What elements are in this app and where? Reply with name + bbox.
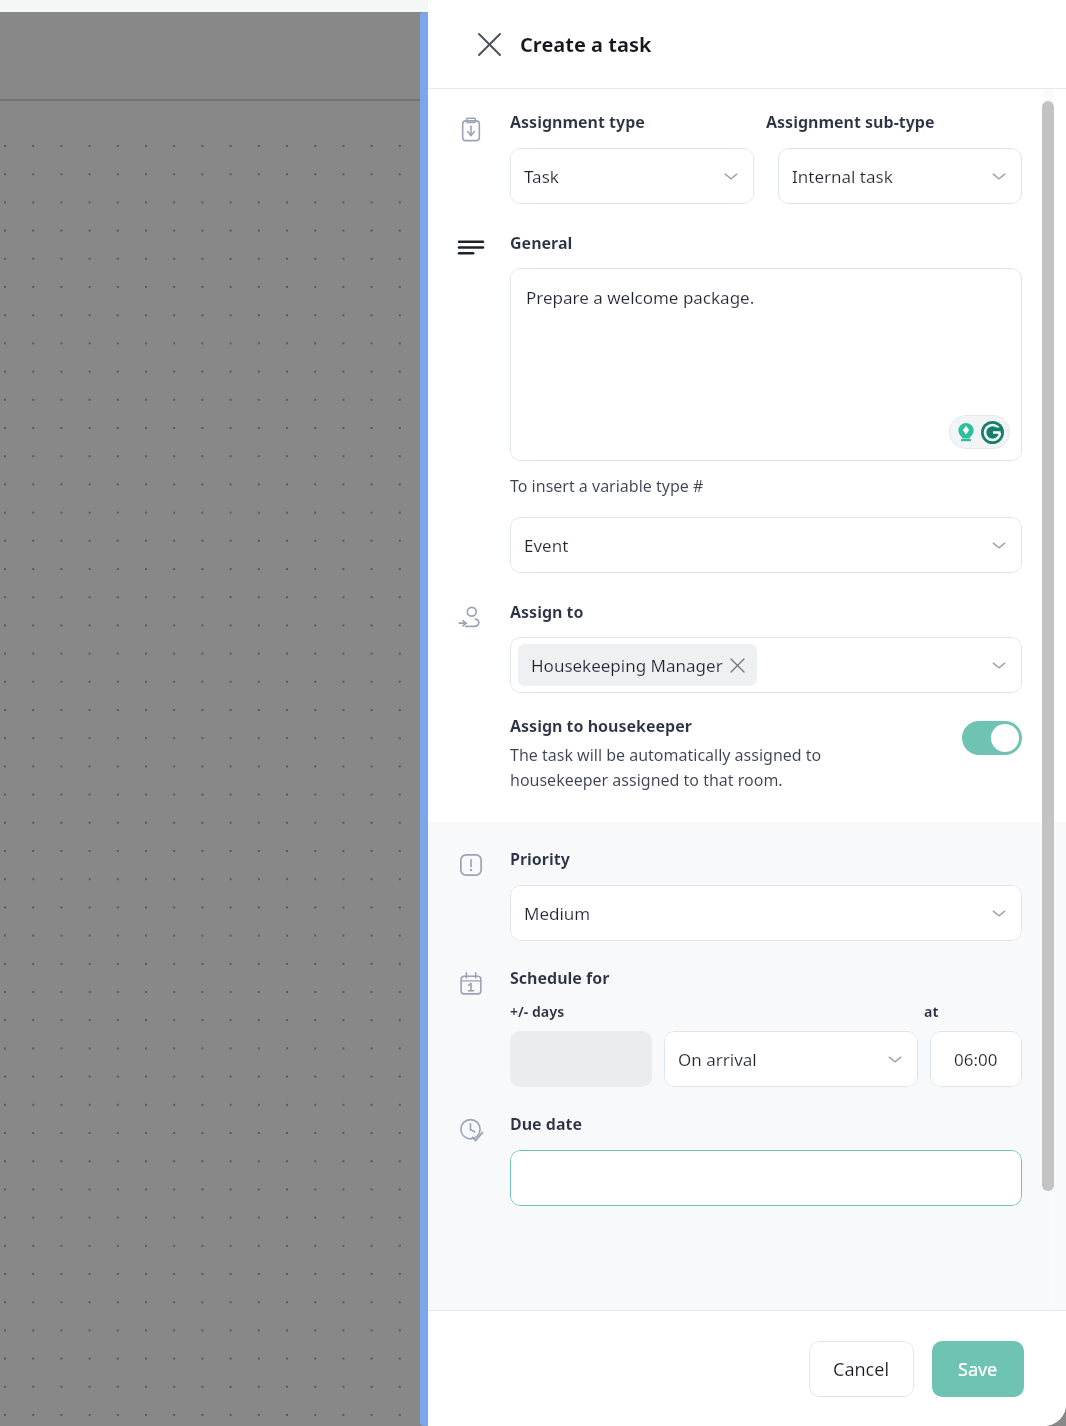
- staticText: Schedule for: [510, 967, 610, 989]
- staticText: Medium: [524, 902, 990, 925]
- staticText: Assignment type: [510, 111, 766, 133]
- staticText: at: [924, 1002, 1022, 1021]
- staticText: Task: [524, 165, 722, 188]
- button[interactable]: Internal task: [778, 148, 1022, 204]
- button[interactable]: Housekeeping Manager: [518, 644, 757, 686]
- button[interactable]: On arrival: [664, 1031, 918, 1087]
- staticText: Priority: [510, 848, 570, 870]
- staticText: The task will be automatically assigned …: [510, 744, 822, 790]
- staticText: Internal task: [792, 165, 990, 188]
- button[interactable]: 06:00: [930, 1031, 1022, 1087]
- staticText: Due date: [510, 1113, 583, 1135]
- button[interactable]: Assign to housekeeper toggle: [962, 721, 1022, 755]
- button[interactable]: Close: [472, 27, 506, 61]
- button[interactable]: Cancel: [809, 1341, 914, 1397]
- button[interactable]: Prepare a welcome package.: [510, 268, 1022, 461]
- staticText: To insert a variable type #: [510, 475, 704, 497]
- staticText: Assign to housekeeper: [510, 715, 692, 737]
- staticText: Prepare a welcome package.: [526, 286, 755, 309]
- button[interactable]: Event: [510, 517, 1022, 573]
- staticText: Save: [958, 1357, 998, 1382]
- staticText: Assign to: [510, 601, 584, 623]
- button[interactable]: Housekeeping Manager: [510, 637, 1022, 693]
- staticText: On arrival: [678, 1048, 886, 1071]
- staticText: Housekeeping Manager: [531, 654, 723, 677]
- staticText: Create a task: [520, 31, 652, 58]
- button[interactable]: Task: [510, 148, 754, 204]
- button[interactable]: [510, 1150, 1022, 1206]
- staticText: 06:00: [954, 1048, 998, 1071]
- button[interactable]: Medium: [510, 885, 1022, 941]
- button[interactable]: Save: [932, 1341, 1024, 1397]
- staticText: General: [510, 232, 573, 254]
- staticText: Event: [524, 534, 990, 557]
- button[interactable]: Grammarly: [949, 415, 1010, 449]
- staticText: Assignment sub-type: [766, 111, 1022, 133]
- staticText: +/- days: [510, 1002, 924, 1021]
- staticText: Cancel: [833, 1357, 890, 1382]
